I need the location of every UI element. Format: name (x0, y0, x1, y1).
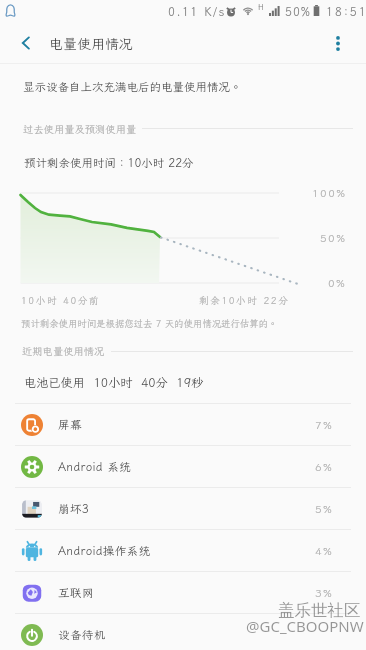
staticText: 0.11 K/s (168, 4, 226, 19)
staticText: 50% (320, 231, 347, 245)
staticText: 显示设备自上次充满电后的电量使用情况。 (23, 79, 242, 94)
button[interactable]: 屏幕 (0, 404, 366, 445)
staticText: 4% (315, 544, 334, 558)
staticText: 5% (315, 502, 334, 516)
staticText: 电池已使用 10小时 40分 19秒 (24, 374, 204, 390)
button[interactable]: Android操作系统 (0, 530, 366, 571)
staticText: Android 系统 (58, 459, 131, 474)
staticText: 预计剩余使用时间是根据您过去 7 天的使用情况进行估算的。 (21, 317, 278, 329)
staticText: 过去使用量及预测使用量 (23, 122, 137, 136)
staticText: 7% (315, 418, 334, 432)
button[interactable]: Android 系统 (0, 446, 366, 487)
staticText: 近期电量使用情况 (22, 344, 105, 358)
button[interactable]: Back (8, 25, 44, 61)
button[interactable]: 互联网 (0, 572, 366, 613)
staticText: 崩坏3 (58, 501, 90, 516)
button[interactable]: More options (320, 25, 356, 61)
staticText: @GC_CBOOPNW (246, 616, 364, 636)
staticText: 互联网 (58, 585, 94, 600)
staticText: 10小时 40分前 (21, 294, 101, 307)
staticText: 18:51 (326, 4, 366, 19)
staticText: Android操作系统 (58, 543, 151, 558)
staticText: H (258, 2, 264, 13)
staticText: 50% (285, 4, 311, 19)
staticText: 盖乐世社区 (278, 600, 361, 621)
staticText: 电量使用情况 (49, 35, 133, 53)
staticText: 3% (315, 586, 334, 600)
staticText: 0% (328, 276, 347, 290)
staticText: 剩余10小时 22分 (199, 294, 290, 307)
staticText: 6% (315, 460, 334, 474)
staticText: 100% (312, 186, 347, 200)
button[interactable]: 崩坏3 (0, 488, 366, 529)
staticText: 屏幕 (58, 417, 82, 432)
staticText: 预计剩余使用时间：10小时 22分 (24, 155, 194, 170)
button[interactable]: 设备待机 (0, 614, 366, 650)
staticText: 设备待机 (58, 627, 106, 642)
